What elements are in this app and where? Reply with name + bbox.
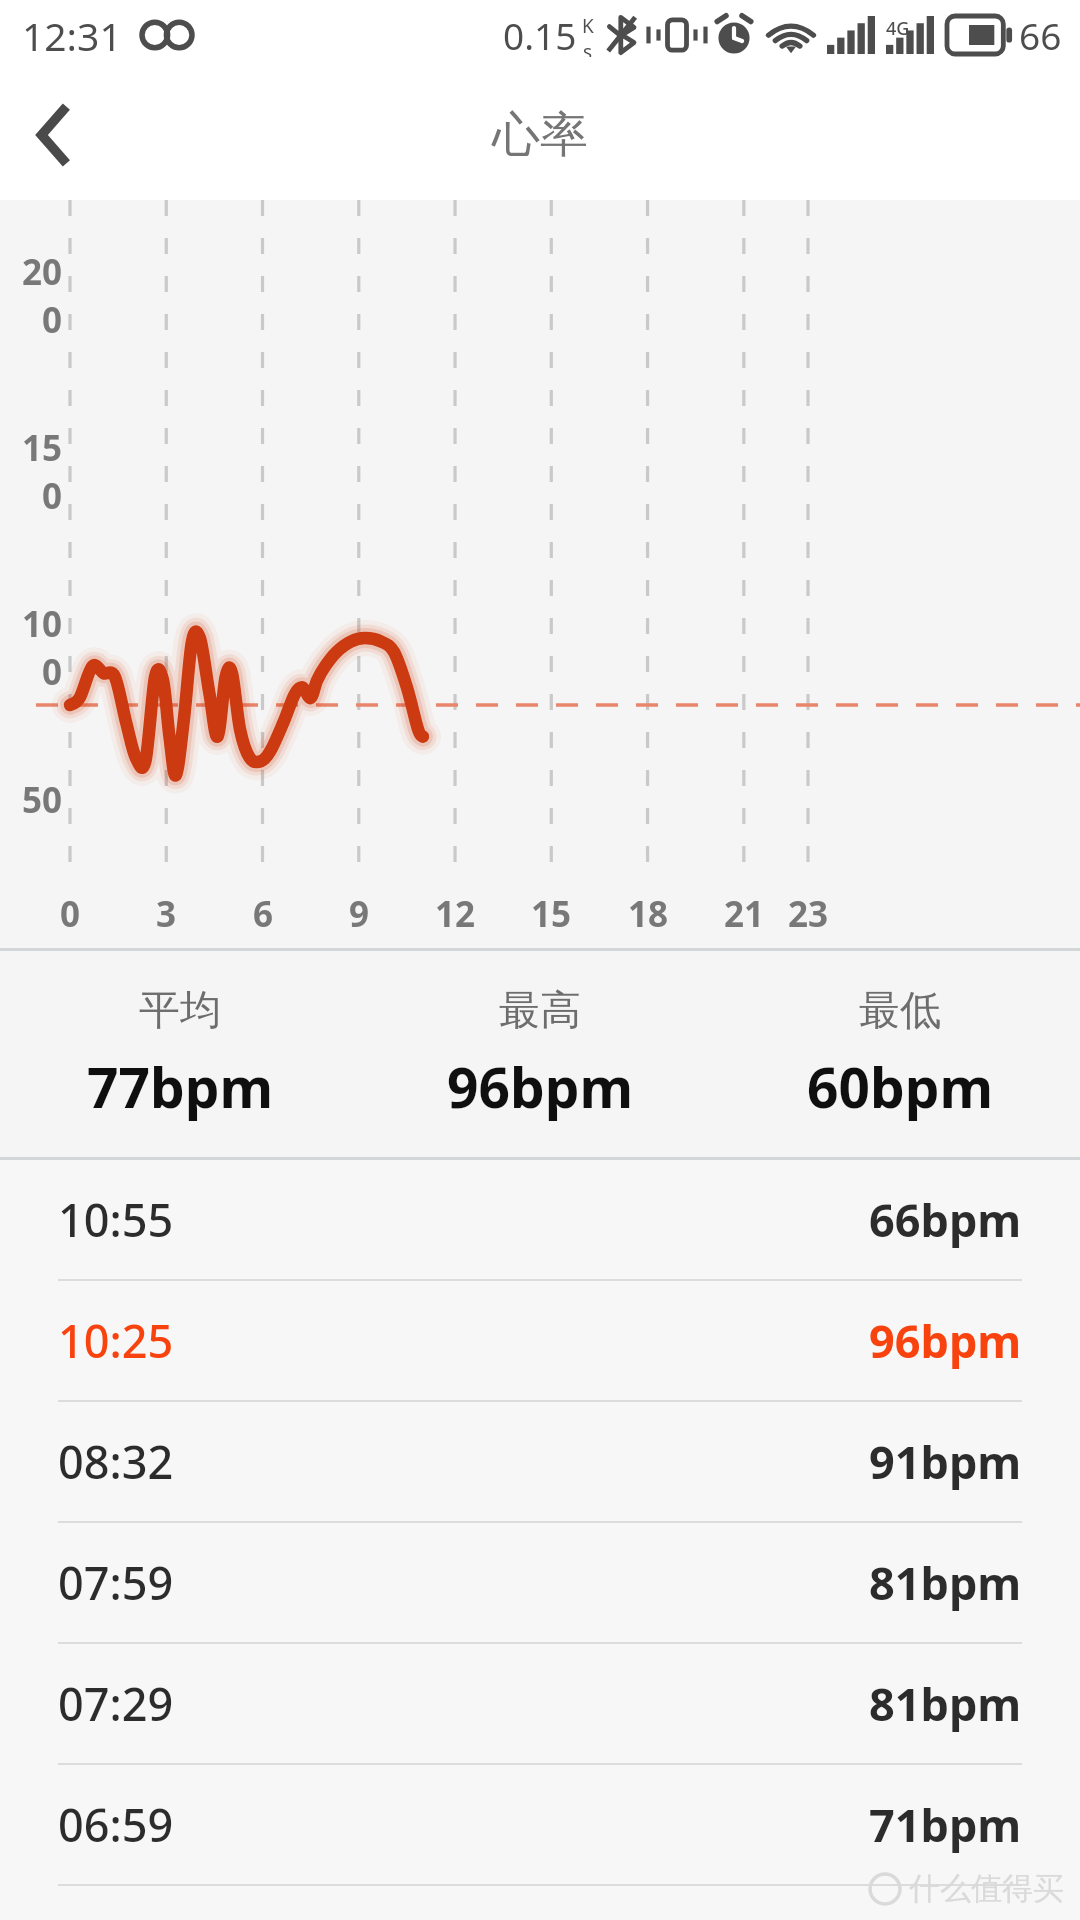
button[interactable]: 10:25 <box>0 1281 1080 1400</box>
staticText: s <box>583 39 593 57</box>
staticText: 心率 <box>492 105 588 165</box>
staticText: 81bpm <box>869 1673 1022 1734</box>
staticText: K <box>582 13 594 39</box>
staticText: 50 <box>14 776 62 824</box>
staticText: 91bpm <box>869 1431 1022 1492</box>
button[interactable]: Back <box>0 82 106 188</box>
staticText: 96bpm <box>447 1049 634 1124</box>
staticText: 150 <box>14 424 62 520</box>
button[interactable]: 10:55 <box>0 1160 1080 1279</box>
staticText: 77bpm <box>87 1049 274 1124</box>
staticText: 71bpm <box>869 1794 1022 1855</box>
staticText: 9 <box>334 890 384 938</box>
staticText: 4G <box>886 16 910 41</box>
staticText: 60bpm <box>807 1049 994 1124</box>
staticText: 什么值得买 <box>909 1869 1064 1908</box>
staticText: 10:25 <box>58 1310 174 1371</box>
staticText: 96bpm <box>869 1310 1022 1371</box>
staticText: 200 <box>14 248 62 344</box>
staticText: 15 <box>526 890 576 938</box>
button[interactable]: 08:32 <box>0 1402 1080 1521</box>
staticText: 0.15 <box>503 10 577 60</box>
button[interactable]: 07:59 <box>0 1523 1080 1642</box>
staticText: 平均 <box>139 985 221 1037</box>
staticText: 66 <box>1019 10 1062 60</box>
staticText: 21 <box>719 890 769 938</box>
staticText: 12 <box>430 890 480 938</box>
staticText: 最低 <box>859 985 941 1037</box>
staticText: 3 <box>141 890 191 938</box>
staticText: 100 <box>14 600 62 696</box>
staticText: 07:59 <box>58 1552 174 1613</box>
staticText: 07:29 <box>58 1673 174 1734</box>
button[interactable]: 07:29 <box>0 1644 1080 1763</box>
staticText: 06:59 <box>58 1794 174 1855</box>
staticText: 0 <box>45 890 95 938</box>
staticText: 10:55 <box>58 1189 174 1250</box>
staticText: 18 <box>623 890 673 938</box>
staticText: 6 <box>238 890 288 938</box>
staticText: 81bpm <box>869 1552 1022 1613</box>
staticText: 12:31 <box>22 9 122 62</box>
staticText: 08:32 <box>58 1431 174 1492</box>
button[interactable]: 06:59 <box>0 1765 1080 1884</box>
staticText: 23 <box>783 890 833 938</box>
staticText: 66bpm <box>869 1189 1022 1250</box>
staticText: 最高 <box>499 985 581 1037</box>
